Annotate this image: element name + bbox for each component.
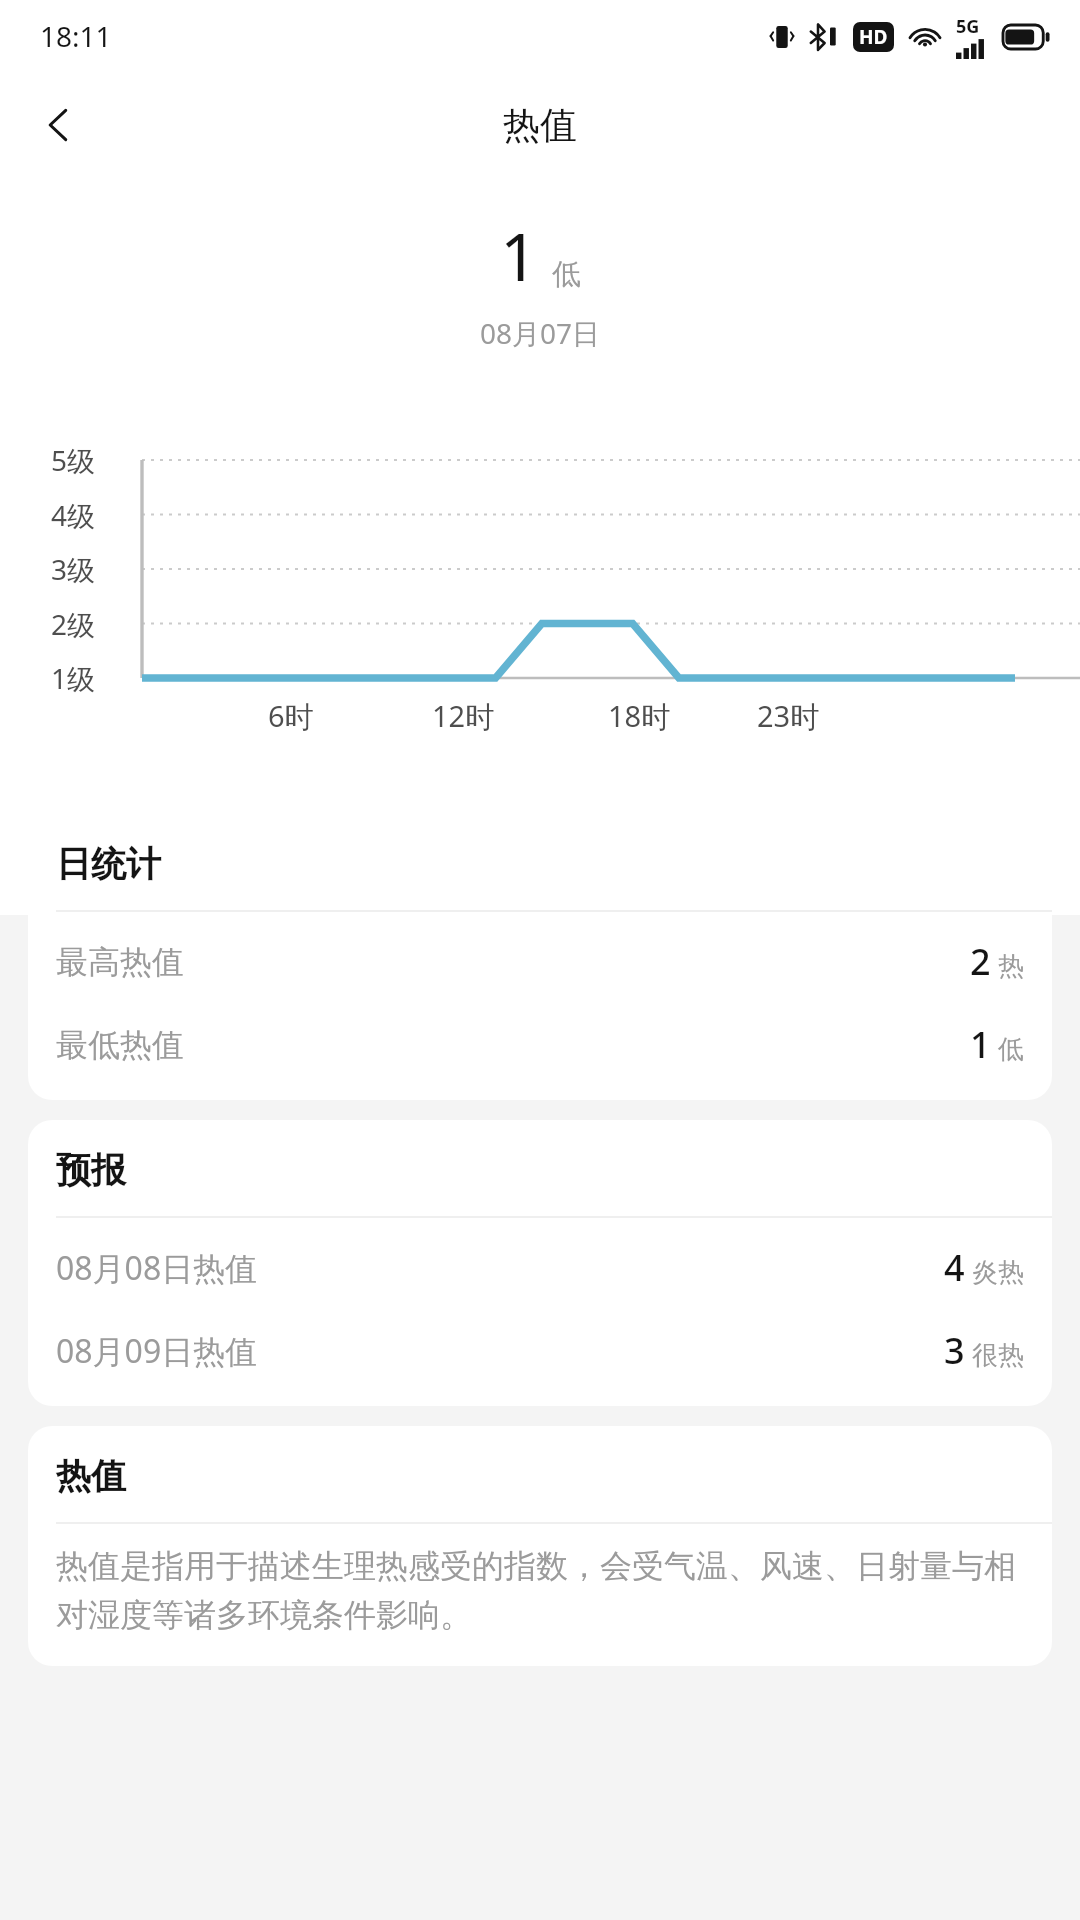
staticText: 预报 [56,1148,126,1192]
staticText: 08月09日热值 [56,1329,258,1373]
staticText: 热值 [503,102,577,149]
staticText: 日统计 [56,842,161,886]
staticText: 4 [944,1243,965,1292]
staticText: HD [859,24,888,50]
staticText: 热 [998,950,1024,983]
staticText: 1 [970,1020,991,1069]
staticText: 6时 [268,696,314,736]
staticText: 5级 [51,441,96,479]
staticText: 很热 [972,1339,1024,1372]
staticText: 12时 [432,696,495,736]
button[interactable]: 08月08日热值 [28,1226,1052,1309]
button[interactable]: 08月09日热值 [28,1309,1052,1392]
button[interactable]: 返回 [16,82,102,168]
staticText: 23时 [757,696,820,736]
staticText: 最高热值 [56,942,184,982]
staticText: 2 [970,937,991,986]
staticText: 热值 [56,1454,126,1498]
staticText: 炎热 [972,1256,1024,1289]
staticText: 最低热值 [56,1025,184,1065]
staticText: 1 [500,210,538,300]
staticText: 18时 [608,696,671,736]
staticText: 08月08日热值 [56,1246,258,1290]
button[interactable]: 最高热值 [28,920,1052,1003]
staticText: 1级 [51,659,96,697]
staticText: 18:11 [40,17,112,55]
staticText: 低 [552,256,581,293]
staticText: 3 [944,1326,965,1375]
staticText: 08月07日 [480,314,601,352]
staticText: 低 [998,1033,1024,1066]
staticText: 5G [956,14,980,39]
staticText: 3级 [51,550,96,588]
staticText: 4级 [51,496,96,534]
button[interactable]: 最低热值 [28,1003,1052,1086]
staticText: 2级 [51,605,96,643]
staticText: 热值是指用于描述生理热感受的指数，会受气温、风速、日射量与相对湿度等诸多环境条件… [56,1546,1030,1636]
